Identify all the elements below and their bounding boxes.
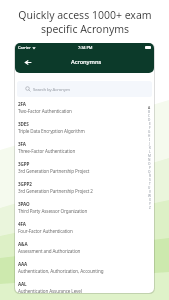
- button[interactable]: AAL: [18, 279, 141, 293]
- button[interactable]: 3DES: [18, 119, 141, 139]
- staticText: Two-Factor Authentication: [18, 108, 72, 114]
- staticText: Third Party Assessor Organization: [18, 208, 88, 214]
- staticText: N: [148, 158, 151, 162]
- staticText: AAL: [18, 281, 27, 287]
- button[interactable]: AAA: [18, 259, 141, 279]
- staticText: L: [149, 150, 151, 154]
- staticText: Y: [149, 202, 151, 206]
- staticText: Acronymns: [71, 58, 102, 66]
- staticText: R: [149, 174, 151, 178]
- staticText: T: [149, 182, 151, 186]
- staticText: S: [149, 178, 151, 182]
- staticText: Authentication, Authorization, Accountin…: [18, 268, 104, 274]
- button[interactable]: 3GPP2: [18, 179, 141, 199]
- staticText: 2FA: [18, 101, 26, 107]
- staticText: E: [149, 122, 151, 126]
- staticText: 3FA: [18, 141, 26, 147]
- staticText: Quickly access 1000+ exam specific Acron…: [18, 8, 152, 36]
- staticText: A&A: [18, 241, 28, 247]
- staticText: J: [149, 142, 150, 146]
- staticText: F: [149, 126, 151, 130]
- staticText: G: [148, 130, 151, 134]
- staticText: M: [148, 154, 151, 158]
- staticText: V: [149, 190, 151, 194]
- button[interactable]: Back: [15, 53, 39, 71]
- staticText: Assessment and Authorization: [18, 248, 81, 254]
- staticText: Q: [148, 170, 151, 174]
- staticText: Search by Acronym: [33, 86, 70, 92]
- staticText: 3rd Generation Partnership Project 2: [18, 188, 93, 194]
- button[interactable]: 3GPP: [18, 159, 141, 179]
- staticText: Three-Factor Authentication: [18, 148, 76, 154]
- staticText: I: [149, 138, 151, 142]
- button[interactable]: 3FA: [18, 139, 141, 159]
- staticText: B: [148, 110, 151, 114]
- staticText: 3DES: [18, 121, 29, 127]
- staticText: H: [148, 134, 151, 138]
- staticText: Carrier: [18, 45, 31, 50]
- button[interactable]: 2FA: [18, 99, 141, 119]
- button[interactable]: 4FA: [18, 219, 141, 239]
- staticText: Authentication Assurance Level: [18, 288, 82, 293]
- staticText: 4FA: [18, 221, 26, 227]
- staticText: 3GPP2: [18, 181, 32, 187]
- staticText: Triple Data Encryption Algorithm: [18, 128, 85, 134]
- staticText: 3PAO: [18, 201, 30, 207]
- button[interactable]: 3PAO: [18, 199, 141, 219]
- staticText: W: [148, 194, 151, 198]
- staticText: Z: [149, 206, 151, 210]
- staticText: 7:34 PM: [78, 45, 93, 50]
- staticText: D: [148, 118, 151, 122]
- staticText: C: [148, 114, 151, 118]
- staticText: U: [148, 186, 151, 190]
- staticText: 3rd Generation Partnership Project: [18, 168, 90, 174]
- staticText: K: [149, 146, 151, 150]
- button[interactable]: A&A: [18, 239, 141, 259]
- staticText: A: [148, 106, 151, 110]
- staticText: P: [149, 166, 151, 170]
- staticText: AAA: [18, 261, 28, 267]
- staticText: X: [149, 198, 151, 202]
- staticText: O: [148, 162, 151, 166]
- button[interactable]: Search by Acronym: [17, 81, 152, 97]
- staticText: 3GPP: [18, 161, 30, 167]
- staticText: Four-Factor Authentication: [18, 228, 73, 234]
